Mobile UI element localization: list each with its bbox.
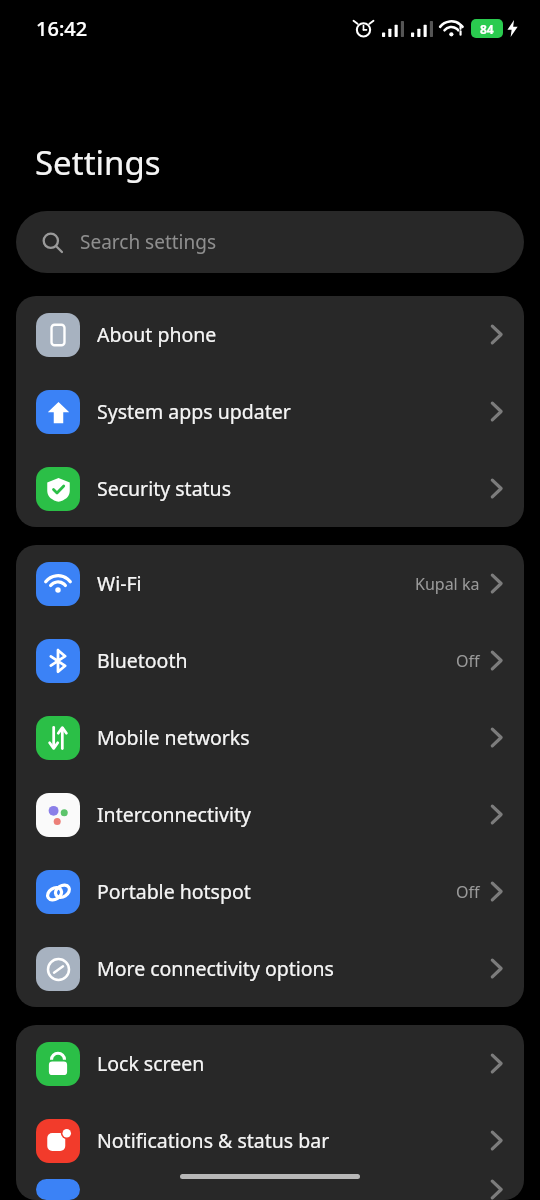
staticText: Search settings bbox=[80, 229, 217, 255]
staticText: System apps updater bbox=[97, 398, 291, 425]
button[interactable]: More connectivity options bbox=[16, 930, 524, 1007]
button[interactable]: Portable hotspot bbox=[16, 853, 524, 930]
button[interactable]: Security status bbox=[16, 450, 524, 527]
staticText: More connectivity options bbox=[97, 955, 334, 982]
staticText: Notifications & status bar bbox=[97, 1127, 330, 1154]
staticText: Wi-Fi bbox=[97, 570, 142, 597]
staticText: Lock screen bbox=[97, 1050, 205, 1077]
staticText: 16:42 bbox=[36, 15, 88, 42]
staticText: Settings bbox=[35, 140, 161, 185]
staticText: Bluetooth bbox=[97, 647, 188, 674]
button[interactable]: Interconnectivity bbox=[16, 776, 524, 853]
staticText: 84 bbox=[480, 21, 494, 37]
staticText: Mobile networks bbox=[97, 724, 250, 751]
button[interactable]: Bluetooth bbox=[16, 622, 524, 699]
button[interactable]: System apps updater bbox=[16, 373, 524, 450]
staticText: Kupal ka bbox=[415, 573, 480, 595]
staticText: Off bbox=[456, 881, 480, 903]
button[interactable]: Wi-Fi bbox=[16, 545, 524, 622]
button[interactable]: About phone bbox=[16, 296, 524, 373]
staticText: Security status bbox=[97, 475, 232, 502]
staticText: Portable hotspot bbox=[97, 878, 251, 905]
staticText: Interconnectivity bbox=[97, 801, 251, 828]
button[interactable] bbox=[16, 1179, 524, 1200]
button[interactable]: Mobile networks bbox=[16, 699, 524, 776]
button[interactable]: Notifications & status bar bbox=[16, 1102, 524, 1179]
staticText: About phone bbox=[97, 321, 217, 348]
staticText: Off bbox=[456, 650, 480, 672]
button[interactable]: Search settings bbox=[16, 211, 524, 273]
button[interactable]: Lock screen bbox=[16, 1025, 524, 1102]
